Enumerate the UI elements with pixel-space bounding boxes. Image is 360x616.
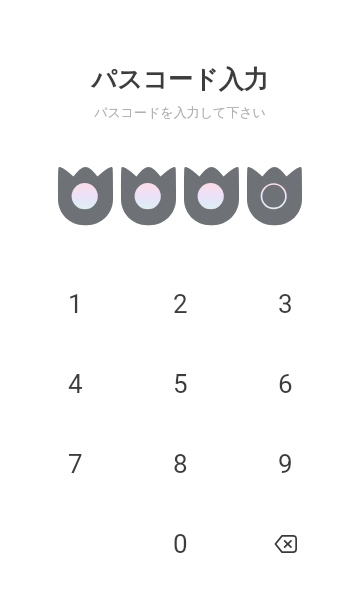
button[interactable]: 7: [39, 428, 111, 500]
button[interactable]: Backspace: [249, 508, 321, 580]
button[interactable]: 2: [144, 268, 216, 340]
staticText: 9: [278, 449, 293, 479]
button[interactable]: 8: [144, 428, 216, 500]
staticText: 6: [278, 369, 293, 399]
staticText: 5: [173, 369, 188, 399]
staticText: 8: [173, 449, 188, 479]
staticText: 0: [173, 529, 188, 559]
button[interactable]: 6: [249, 348, 321, 420]
staticText: 2: [173, 289, 188, 319]
staticText: パスコード入力: [91, 64, 269, 95]
button[interactable]: 0: [144, 508, 216, 580]
button[interactable]: 4: [39, 348, 111, 420]
button[interactable]: 3: [249, 268, 321, 340]
button[interactable]: 9: [249, 428, 321, 500]
staticText: 7: [68, 449, 83, 479]
staticText: 1: [68, 289, 83, 319]
staticText: 4: [68, 369, 83, 399]
button[interactable]: 5: [144, 348, 216, 420]
button[interactable]: 1: [39, 268, 111, 340]
staticText: 3: [278, 289, 293, 319]
staticText: パスコードを入力して下さい: [94, 104, 266, 120]
